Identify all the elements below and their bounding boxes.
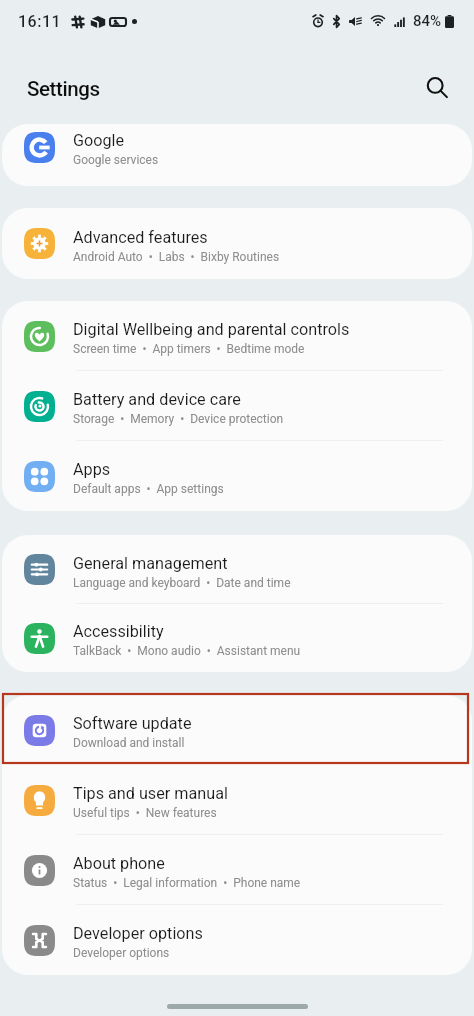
button[interactable]: Google [2,124,472,178]
button[interactable]: Developer options [2,905,472,975]
button[interactable]: Advanced features [2,208,472,279]
button[interactable]: About phone [2,835,472,905]
staticText: Status • Legal information • Phone name [73,876,301,890]
staticText: Google [73,131,125,150]
staticText: Screen time • App timers • Bedtime mode [73,342,305,356]
staticText: Developer options [73,924,203,943]
staticText: Language and keyboard • Date and time [73,576,291,590]
button[interactable]: Digital Wellbeing and parental controls [2,301,472,371]
button[interactable]: Software update [2,695,472,765]
staticText: Useful tips • New features [73,806,217,820]
staticText: Battery and device care [73,390,241,409]
staticText: Storage • Memory • Device protection [73,412,284,426]
staticText: About phone [73,854,165,873]
staticText: Apps [73,460,111,479]
staticText: 16:11 [18,12,62,31]
staticText: Software update [73,714,192,733]
staticText: TalkBack • Mono audio • Assistant menu [73,644,301,658]
staticText: 84% [413,12,442,30]
staticText: Digital Wellbeing and parental controls [73,320,350,339]
staticText: Developer options [73,946,170,960]
button[interactable]: Search [416,67,458,109]
staticText: Google services [73,153,159,167]
staticText: Tips and user manual [73,784,228,803]
staticText: Advanced features [73,228,208,247]
staticText: General management [73,554,228,573]
button[interactable]: General management [2,535,472,604]
button[interactable]: Battery and device care [2,371,472,441]
button[interactable]: Accessibility [2,604,472,672]
staticText: Settings [27,77,100,101]
staticText: Default apps • App settings [73,482,224,496]
staticText: Android Auto • Labs • Bixby Routines [73,250,280,264]
button[interactable]: Apps [2,441,472,511]
staticText: Download and install [73,736,185,750]
button[interactable]: Tips and user manual [2,765,472,835]
staticText: Accessibility [73,622,164,641]
